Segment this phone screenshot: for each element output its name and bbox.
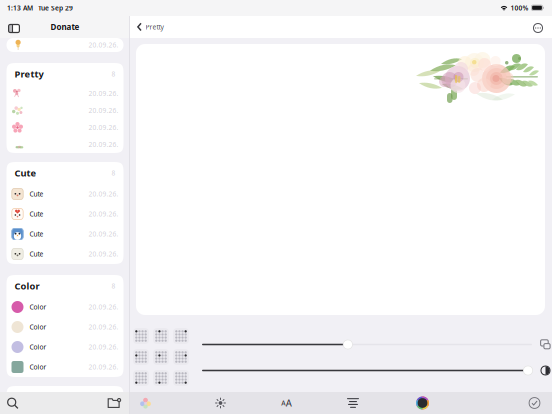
button[interactable]: Align position	[133, 370, 149, 386]
staticText: Cute	[29, 210, 43, 218]
button[interactable]: A	[276, 393, 296, 413]
staticText: Color	[29, 323, 46, 331]
staticText: 20.09.26.	[88, 230, 118, 238]
button[interactable]: Pretty	[135, 17, 165, 37]
button[interactable]: New Folder	[105, 393, 124, 412]
staticText: 20.09.26.	[88, 89, 118, 98]
button[interactable]: Align position	[153, 370, 169, 386]
staticText: 20.09.26.	[88, 123, 118, 132]
staticText: A	[281, 399, 285, 407]
staticText: 8	[111, 282, 115, 290]
staticText: 8	[111, 169, 115, 177]
button[interactable]: Align position	[153, 349, 169, 365]
staticText: 20.09.26.	[88, 106, 118, 115]
button[interactable]: Color picker	[412, 393, 432, 413]
staticText: 20.09.26.	[88, 41, 118, 49]
staticText: Cute	[29, 250, 43, 258]
staticText: Color	[29, 343, 46, 351]
button[interactable]: Cute	[6, 244, 123, 264]
button[interactable]: 20.09.26.	[6, 102, 123, 119]
staticText: 20.09.26.	[88, 140, 118, 149]
staticText: Cute	[29, 230, 43, 238]
staticText: Sticker	[14, 391, 47, 403]
staticText: Color	[29, 363, 46, 371]
staticText: 100%	[510, 4, 528, 12]
staticText: 20.09.26.	[88, 323, 118, 331]
staticText: Cute	[14, 167, 36, 179]
staticText: 1:13 AM	[7, 4, 33, 12]
button[interactable]: Cute	[6, 184, 123, 204]
button[interactable]: Align position	[173, 349, 189, 365]
button[interactable]: More options	[530, 18, 546, 36]
staticText: 20.09.26.	[88, 343, 118, 351]
button[interactable]: Colors	[135, 393, 155, 413]
button[interactable]: Align position	[173, 328, 189, 344]
button[interactable]: Color	[6, 357, 123, 377]
staticText: 20.09.26.	[88, 303, 118, 311]
button[interactable]: Align position	[133, 349, 149, 365]
staticText: 8	[111, 393, 115, 401]
button[interactable]: Align position	[173, 370, 189, 386]
button[interactable]: Align position	[153, 328, 169, 344]
button[interactable]: Search	[3, 393, 22, 412]
button[interactable]: Color	[6, 297, 123, 317]
button[interactable]: Text alignment	[343, 393, 363, 413]
staticText: Cute	[29, 190, 43, 198]
staticText: 20.09.26.	[88, 190, 118, 198]
button[interactable]: Align position	[133, 328, 149, 344]
button[interactable]: Cute	[6, 224, 123, 244]
staticText: Color	[29, 303, 46, 311]
button[interactable]: Color	[6, 337, 123, 357]
staticText: Pretty	[145, 23, 163, 31]
staticText: Donate	[50, 22, 79, 32]
staticText: A	[286, 397, 292, 409]
staticText: Tue Sep 29	[38, 4, 73, 12]
button[interactable]: Toggle Sidebar	[6, 17, 22, 36]
staticText: 20.09.26.	[88, 210, 118, 218]
button[interactable]: Effects	[210, 393, 230, 413]
button[interactable]: 20.09.26.	[6, 136, 123, 153]
button[interactable]: Done	[524, 393, 544, 413]
staticText: 20.09.26.	[88, 363, 118, 371]
staticText: Pretty	[14, 68, 43, 80]
button[interactable]: Color	[6, 317, 123, 337]
button[interactable]: 20.09.26.	[6, 85, 123, 102]
staticText: Color	[14, 280, 39, 292]
staticText: 20.09.26.	[88, 250, 118, 258]
button[interactable]: Cute	[6, 204, 123, 224]
staticText: 8	[111, 70, 115, 78]
button[interactable]: 20.09.26.	[6, 119, 123, 136]
